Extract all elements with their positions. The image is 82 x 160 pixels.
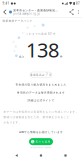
staticText: 詳しくは LINE 公式アカウントをご覧ください (30, 147, 51, 148)
staticText: 友だち追加 (35, 140, 50, 143)
button[interactable]: Recent apps (57, 151, 73, 159)
staticText: 本データは市役所の公表資料をもとに作成しています。 (3, 110, 78, 113)
staticText: 数値には速報値を含むため、後日修正されること (3, 115, 69, 119)
staticText: portal.example.lg.jp (13, 12, 40, 15)
staticText: 9:41 (2, 2, 9, 5)
staticText: LINEでも情報をお届けしています (19, 130, 63, 134)
staticText: あと (19, 55, 25, 58)
staticText: 各項目のデータは毎月更新されます (17, 91, 65, 94)
staticText: 詳細は公式サイトで (27, 99, 54, 102)
staticText: L (32, 140, 33, 143)
staticText: 達成見込み 7 月 (30, 73, 52, 76)
staticText: 政策進捗データバンク (2, 19, 32, 23)
staticText: 見本市センター・政策進捗状況のお知らせ (13, 8, 60, 12)
button[interactable]: Share (67, 7, 75, 16)
button[interactable]: Back (1, 7, 9, 16)
staticText: これまでの達成 80 件 (26, 32, 56, 36)
staticText: があります。 (3, 121, 21, 124)
button[interactable]: L (29, 138, 53, 145)
staticText: 市全体の取り組み状況をまとめました (15, 83, 66, 86)
button[interactable]: Back (8, 151, 24, 159)
staticText: 138 (26, 36, 59, 63)
staticText: 件 (60, 55, 63, 58)
button[interactable]: More options (75, 7, 81, 16)
staticText: 87 (76, 2, 80, 5)
button[interactable]: Home (33, 151, 49, 159)
